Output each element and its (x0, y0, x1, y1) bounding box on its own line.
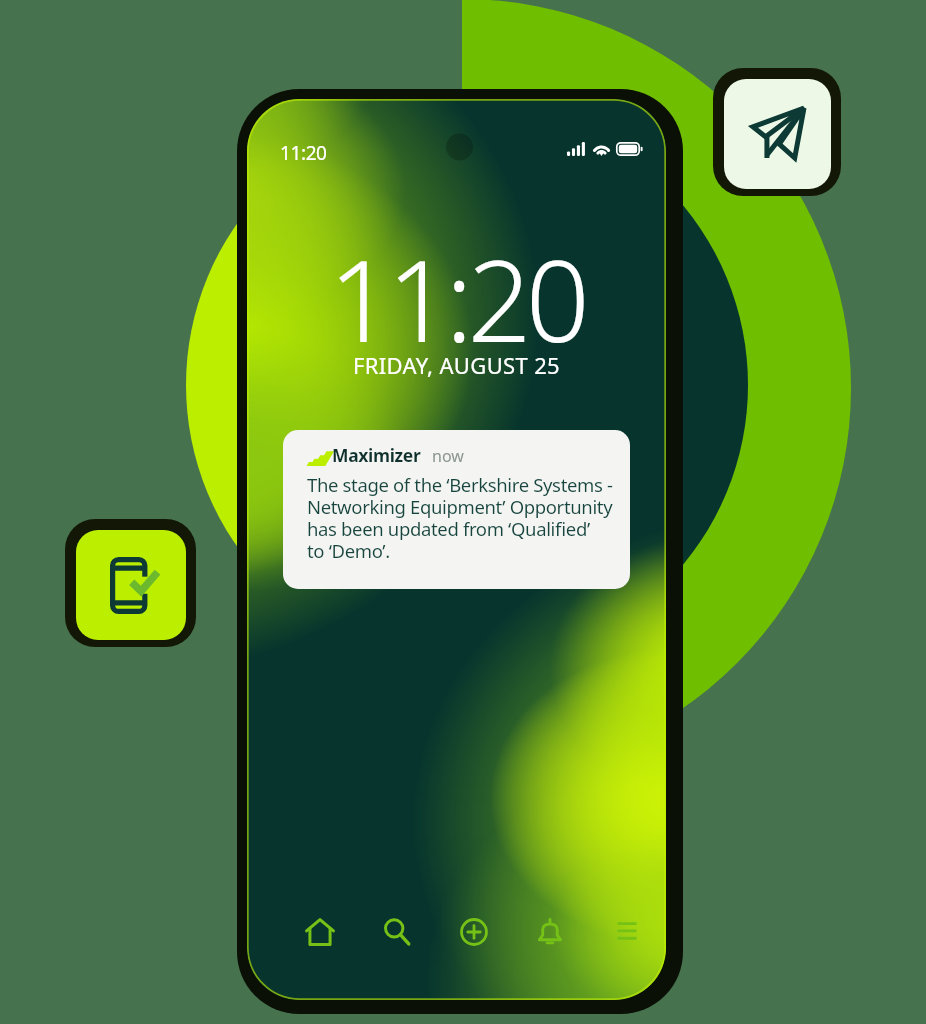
staticText: FRIDAY, AUGUST 25 (247, 350, 666, 380)
button[interactable]: Menu (604, 909, 650, 955)
staticText: 11:20 (280, 140, 327, 166)
button[interactable]: Mobile check (76, 530, 186, 640)
button[interactable]: Send (724, 79, 831, 189)
staticText: Maximizer (332, 443, 421, 467)
button[interactable]: Home (297, 909, 343, 955)
button[interactable]: Add (451, 909, 497, 955)
staticText: The stage of the ‘Berkshire Systems - Ne… (307, 472, 613, 564)
button[interactable]: Search (374, 909, 420, 955)
button[interactable]: Maximizer (283, 430, 630, 589)
staticText: 11:20 (247, 222, 666, 375)
button[interactable]: Notifications (527, 909, 573, 955)
staticText: now (432, 445, 464, 467)
